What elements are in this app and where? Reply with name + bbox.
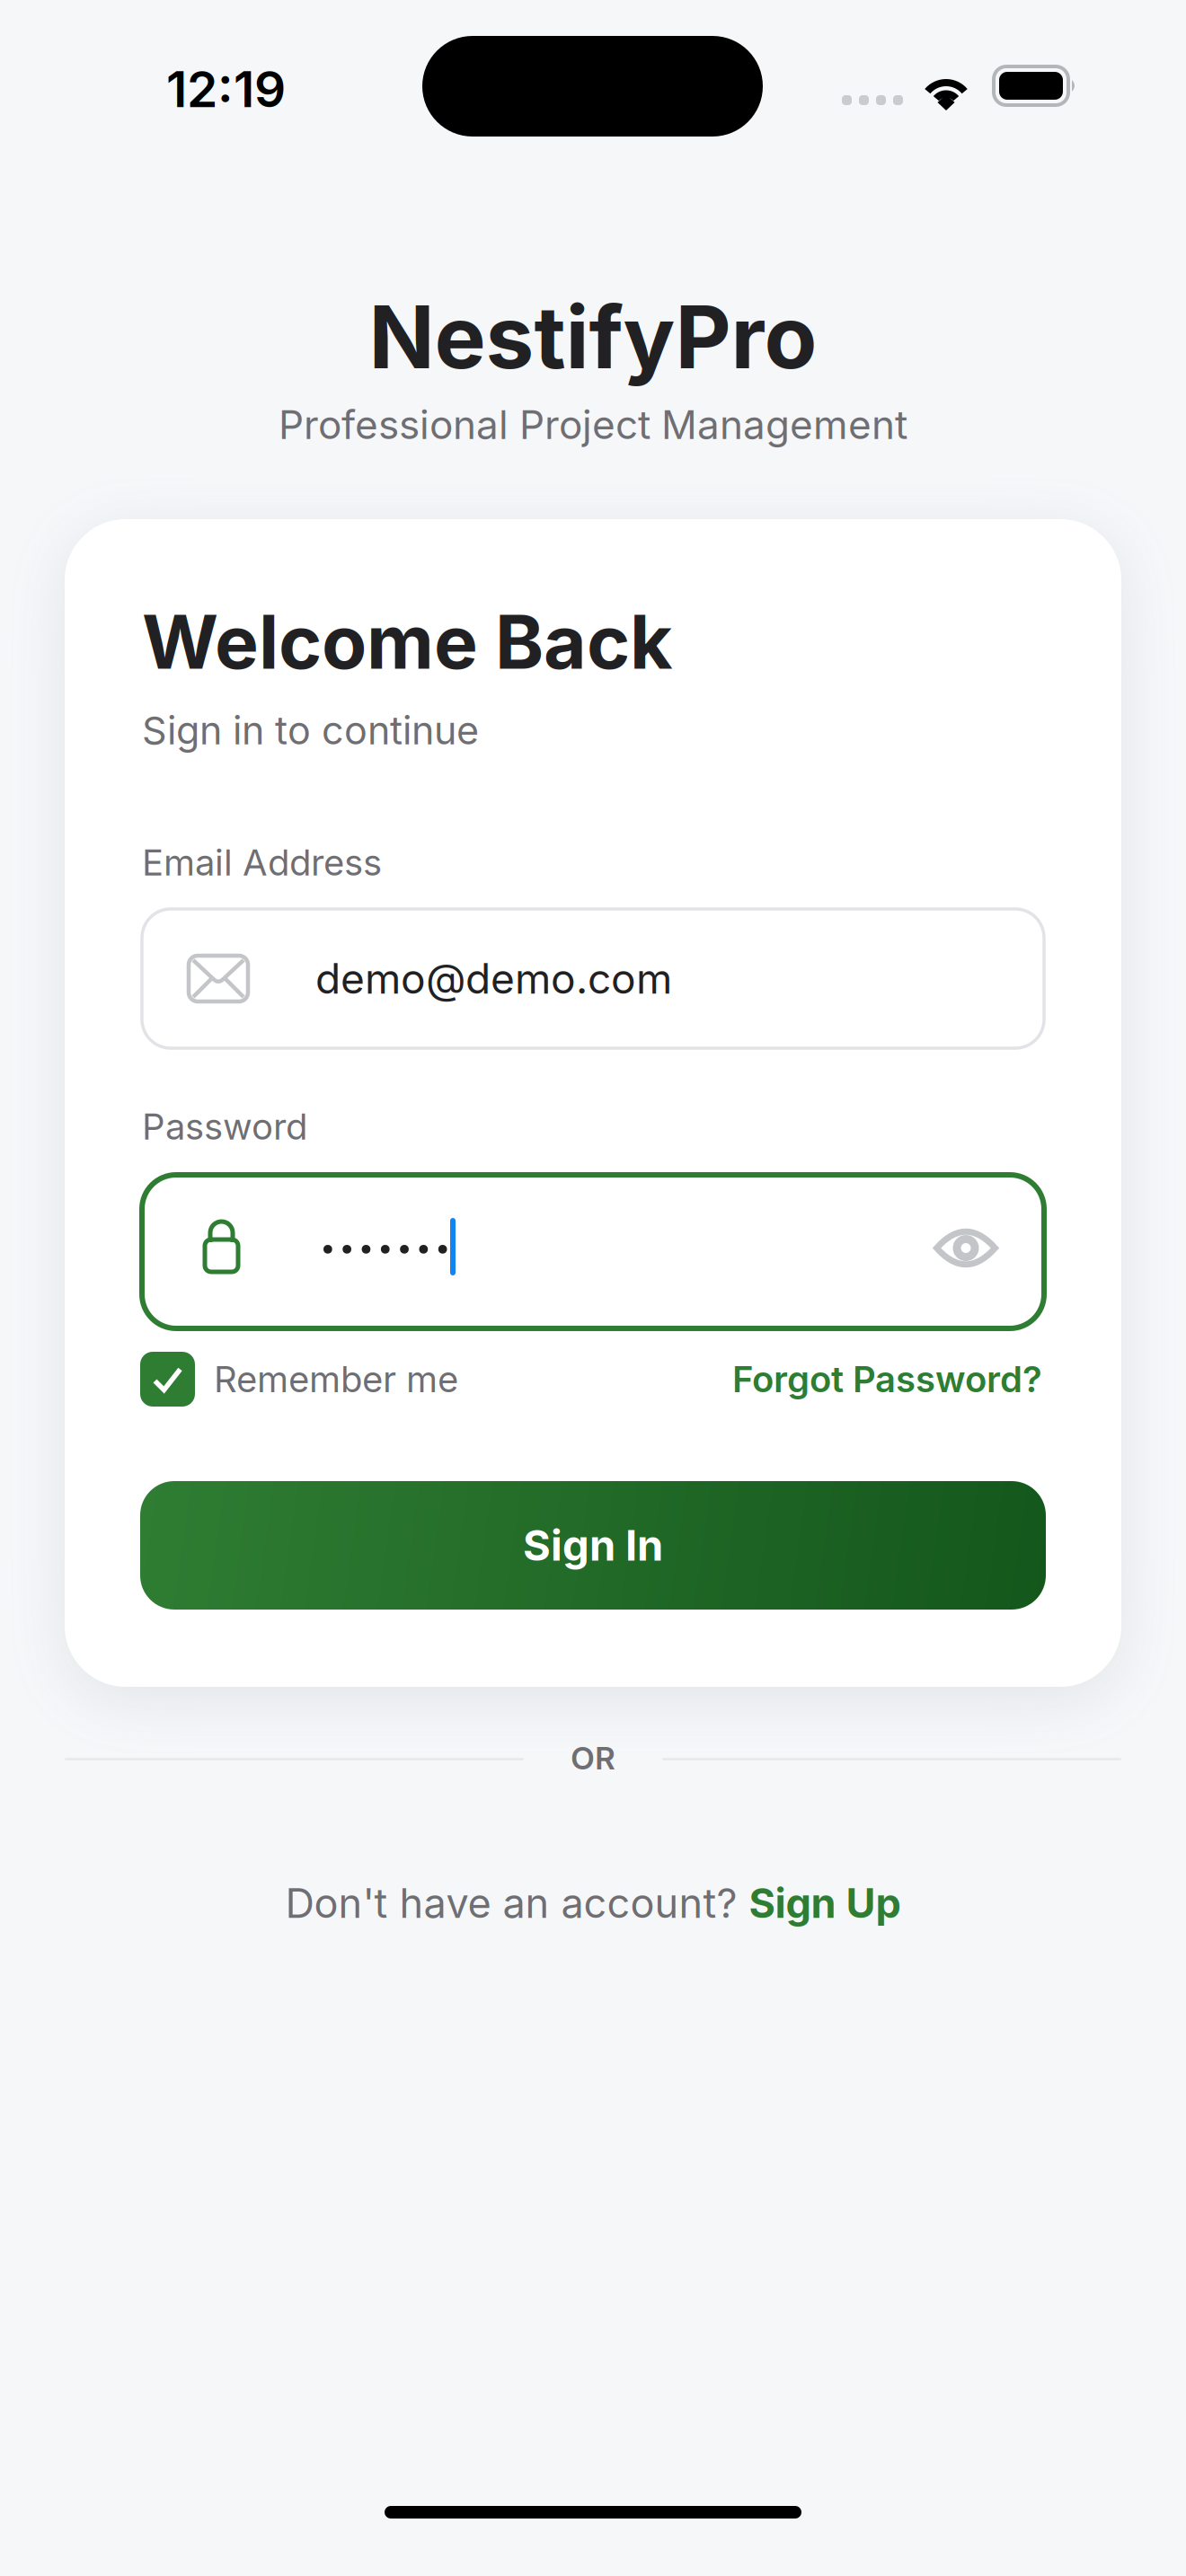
staticText: Sign Up: [749, 1879, 901, 1928]
staticText: Sign In: [523, 1520, 663, 1571]
staticText: Password: [142, 1105, 307, 1148]
staticText: 12:19: [166, 59, 286, 119]
staticText: Forgot Password?: [732, 1357, 1042, 1401]
staticText: OR: [571, 1739, 615, 1777]
button[interactable]: Don't have an account?: [0, 1875, 1186, 1932]
staticText: demo@demo.com: [315, 954, 672, 1004]
button[interactable]: Forgot Password?: [732, 1357, 1042, 1401]
staticText: Sign in to continue: [142, 707, 479, 754]
staticText: Remember me: [214, 1357, 458, 1401]
staticText: Professional Project Management: [279, 401, 907, 448]
staticText: NestifyPro: [369, 285, 817, 389]
button[interactable]: Show password: [898, 1171, 1033, 1325]
staticText: Welcome Back: [142, 597, 673, 686]
button[interactable]: Remember me: [140, 1352, 439, 1407]
button[interactable]: Sign In: [140, 1481, 1046, 1610]
staticText: Don't have an account?: [285, 1879, 749, 1928]
staticText: Email Address: [142, 841, 382, 884]
